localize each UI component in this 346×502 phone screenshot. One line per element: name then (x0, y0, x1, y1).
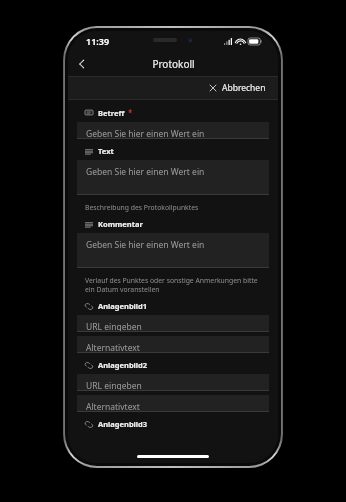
button[interactable]: URL eingeben (77, 374, 269, 391)
button[interactable]: Abbrechen (208, 82, 266, 94)
staticText: Alternativtext (86, 401, 140, 412)
staticText: Betreff (98, 108, 125, 118)
staticText: 11:39 (86, 35, 110, 47)
staticText: Geben Sie hier einen Wert ein (86, 128, 205, 139)
staticText: Anlagenbild3 (98, 419, 148, 429)
button[interactable]: URL eingeben (77, 315, 269, 332)
staticText: Verlauf des Punktes oder sonstige Anmerk… (85, 276, 259, 294)
staticText: Protokoll (152, 57, 195, 71)
button[interactable]: Geben Sie hier einen Wert ein (77, 160, 269, 195)
button[interactable]: Geben Sie hier einen Wert ein (77, 122, 269, 139)
staticText: Geben Sie hier einen Wert ein (86, 166, 205, 178)
staticText: Anlagenbild2 (98, 360, 148, 370)
staticText: URL eingeben (86, 321, 142, 332)
staticText: Geben Sie hier einen Wert ein (86, 239, 205, 251)
button[interactable]: Alternativtext (77, 336, 269, 353)
button[interactable]: Geben Sie hier einen Wert ein (77, 233, 269, 268)
staticText: URL eingeben (86, 380, 142, 391)
staticText: Beschreibung des Protokollpunktes (85, 203, 259, 212)
staticText: Abbrechen (222, 82, 266, 94)
staticText: Kommentar (98, 219, 143, 229)
staticText: Text (98, 146, 114, 156)
button[interactable]: Alternativtext (77, 395, 269, 412)
staticText: Alternativtext (86, 342, 140, 353)
staticText: * (128, 107, 133, 118)
staticText: Anlagenbild1 (98, 301, 148, 311)
button[interactable]: Back (72, 54, 92, 74)
